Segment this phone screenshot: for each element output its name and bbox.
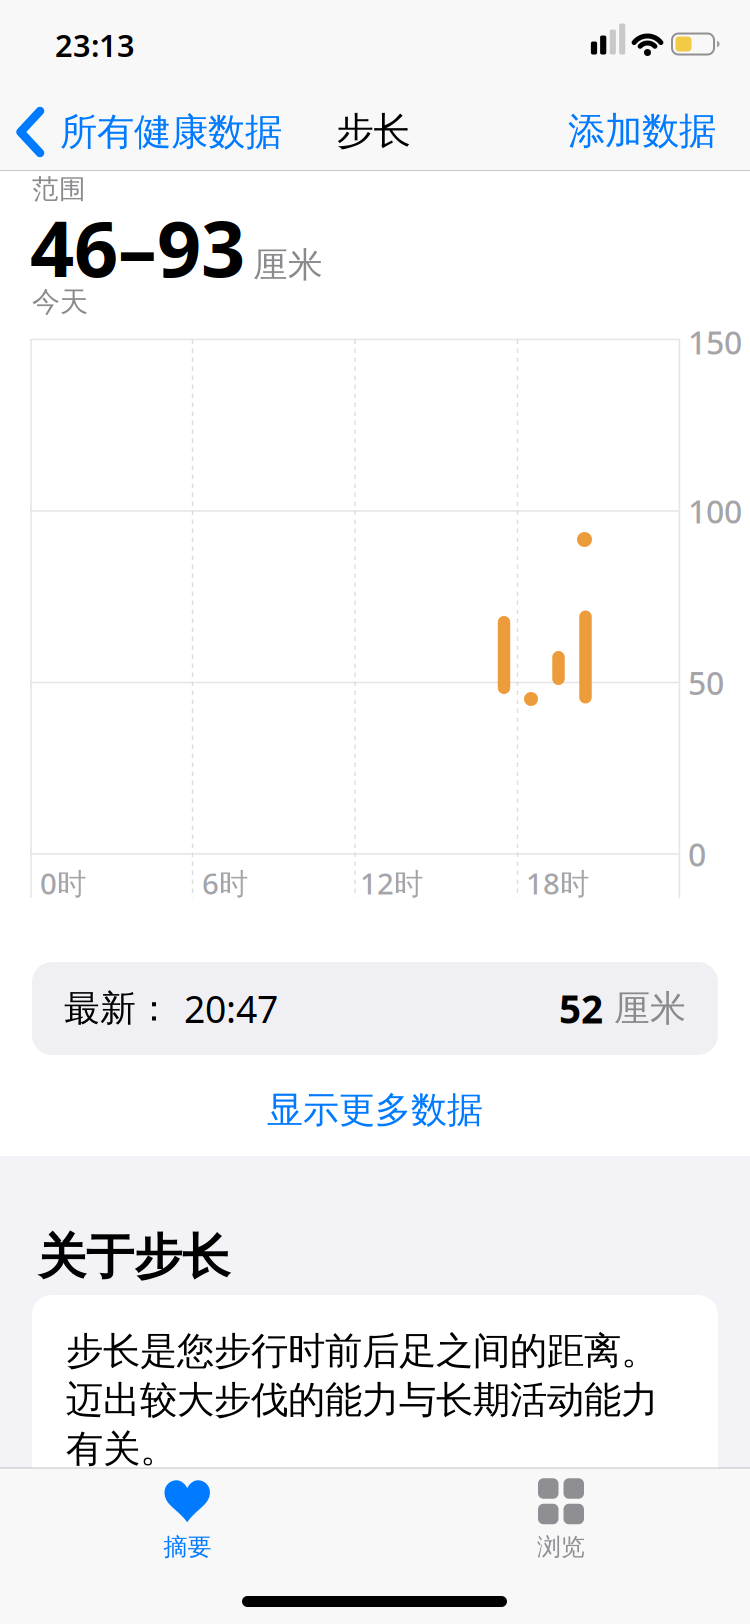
staticText: 显示更多数据	[267, 1088, 483, 1132]
staticText: 今天	[32, 285, 88, 319]
staticText: 有关。	[66, 1426, 177, 1472]
staticText: 46–93	[30, 196, 245, 298]
staticText: 100	[688, 490, 742, 532]
staticText: 添加数据	[568, 108, 716, 154]
staticText: 关于步长	[38, 1227, 230, 1286]
staticText: 0	[688, 833, 706, 875]
button[interactable]: 显示更多数据	[267, 1088, 483, 1132]
staticText: 0时	[40, 863, 86, 902]
button[interactable]: 浏览	[537, 1478, 585, 1562]
staticText: 12时	[360, 863, 423, 902]
staticText: 20:47	[184, 984, 278, 1033]
staticText: 23:13	[55, 25, 135, 65]
staticText: 所有健康数据	[60, 109, 282, 155]
staticText: 迈出较大步伐的能力与长期活动能力	[66, 1377, 658, 1423]
staticText: 厘米	[603, 986, 686, 1031]
staticText: 150	[688, 321, 742, 363]
button[interactable]: 摘要	[163, 1480, 211, 1562]
staticText: 浏览	[537, 1532, 585, 1562]
staticText: 50	[688, 661, 724, 704]
button[interactable]: 所有健康数据	[16, 109, 282, 155]
staticText: 最新：	[64, 986, 172, 1031]
staticText: 18时	[526, 863, 589, 902]
staticText: 52	[559, 983, 603, 1034]
button[interactable]: 添加数据	[568, 108, 716, 154]
staticText: 步长	[336, 108, 410, 154]
staticText: 厘米	[253, 244, 323, 286]
staticText: 摘要	[163, 1532, 211, 1562]
staticText: 6时	[202, 863, 248, 902]
staticText: 范围	[32, 173, 86, 205]
staticText: 步长是您步行时前后足之间的距离。	[66, 1328, 658, 1374]
